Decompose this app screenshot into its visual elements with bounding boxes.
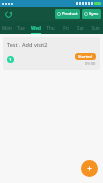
- staticText: Mon: [2, 25, 12, 31]
- staticText: 09:00: [85, 61, 96, 66]
- staticText: Started: [78, 54, 93, 59]
- button[interactable]: Test . Add visit2: [3, 37, 100, 70]
- button[interactable]: Sync: [82, 9, 101, 19]
- staticText: Fri: [63, 25, 69, 31]
- staticText: Tue: [17, 25, 25, 31]
- staticText: Test . Add visit2: [7, 41, 48, 49]
- button[interactable]: Product: [55, 9, 80, 19]
- staticText: Wed: [31, 25, 41, 31]
- button[interactable]: Wed: [28, 21, 43, 34]
- staticText: Sync: [89, 11, 99, 17]
- button[interactable]: Thu: [43, 21, 58, 34]
- staticText: 1: [9, 57, 12, 63]
- button[interactable]: Add: [81, 160, 98, 177]
- staticText: Sun: [91, 25, 100, 31]
- button[interactable]: Sat: [73, 21, 88, 34]
- button[interactable]: Refresh: [3, 9, 13, 19]
- button[interactable]: Started: [75, 53, 96, 60]
- staticText: Thu: [46, 25, 55, 31]
- button[interactable]: Mon: [0, 21, 14, 34]
- button[interactable]: Tue: [14, 21, 28, 34]
- button[interactable]: Sun: [88, 21, 103, 34]
- staticText: Sat: [77, 25, 84, 31]
- button[interactable]: Fri: [58, 21, 73, 34]
- staticText: Product: [62, 11, 78, 17]
